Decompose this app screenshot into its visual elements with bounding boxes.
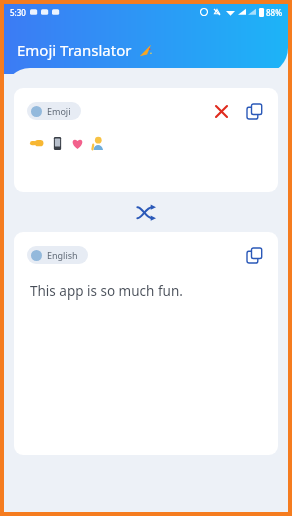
button[interactable]: English — [14, 232, 278, 455]
staticText: Emoji Translator — [17, 40, 132, 60]
button[interactable]: Copy — [242, 243, 266, 267]
button[interactable]: Emoji — [31, 105, 71, 117]
staticText: English — [47, 249, 78, 261]
button[interactable]: Emoji — [14, 88, 278, 192]
button[interactable]: English — [31, 249, 78, 261]
button[interactable]: Clear — [209, 99, 233, 123]
button[interactable]: Swap languages — [129, 195, 163, 229]
staticText: Emoji — [47, 105, 71, 117]
staticText: This app is so much fun. — [30, 282, 183, 300]
button[interactable]: Copy — [242, 99, 266, 123]
staticText: 88% — [266, 7, 282, 18]
staticText: 5:30 — [10, 7, 26, 18]
